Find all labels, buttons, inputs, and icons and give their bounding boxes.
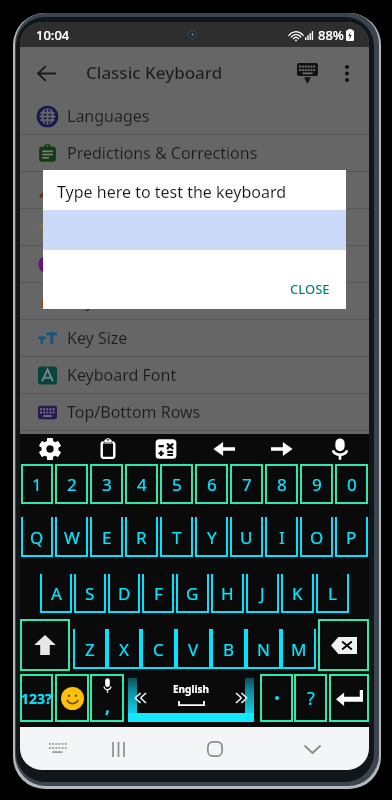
- staticText: 123?: [21, 689, 52, 708]
- button[interactable]: Sound & Vibration: [20, 246, 369, 283]
- staticText: C: [153, 638, 164, 661]
- staticText: Languages: [67, 105, 150, 127]
- staticText: Q: [30, 526, 44, 549]
- button[interactable]: Q: [21, 517, 53, 557]
- button[interactable]: 0: [335, 464, 368, 504]
- staticText: I: [279, 526, 285, 549]
- button[interactable]: Voice input: [311, 434, 369, 464]
- staticText: CLOSE: [290, 280, 330, 298]
- button[interactable]: H: [211, 574, 244, 613]
- staticText: Gestures: [67, 179, 134, 201]
- button[interactable]: Recents: [98, 729, 138, 769]
- button[interactable]: Settings: [20, 434, 79, 464]
- button[interactable]: Key Press: [20, 283, 369, 320]
- staticText: N: [257, 638, 270, 661]
- button[interactable]: Key Size: [20, 320, 369, 357]
- button[interactable]: 2: [55, 464, 88, 504]
- button[interactable]: C: [141, 629, 176, 669]
- button[interactable]: Keyboard Font: [20, 357, 369, 394]
- staticText: T: [172, 526, 182, 549]
- button[interactable]: P: [335, 517, 368, 557]
- staticText: U: [240, 526, 253, 549]
- button[interactable]: Back: [26, 53, 66, 93]
- button[interactable]: Languages: [20, 98, 369, 135]
- button[interactable]: D: [108, 574, 140, 613]
- staticText: 10:04: [36, 26, 70, 44]
- button[interactable]: 123?: [20, 674, 53, 722]
- button[interactable]: Predictions & Corrections: [20, 135, 369, 172]
- button[interactable]: 6: [195, 464, 228, 504]
- button[interactable]: G: [176, 574, 209, 613]
- staticText: ?: [307, 686, 315, 711]
- button[interactable]: Backspace: [318, 619, 369, 671]
- button[interactable]: 3: [90, 464, 123, 504]
- staticText: D: [118, 582, 131, 605]
- button[interactable]: X: [107, 629, 141, 669]
- staticText: 8: [277, 473, 287, 496]
- staticText: Predictions & Corrections: [67, 142, 258, 164]
- button[interactable]: Move right: [253, 434, 311, 464]
- button[interactable]: A: [40, 574, 72, 613]
- staticText: 6: [207, 473, 217, 496]
- button[interactable]: Hide keyboard: [288, 54, 326, 92]
- button[interactable]: Text editing: [137, 434, 195, 464]
- button[interactable]: Clipboard: [79, 434, 137, 464]
- button[interactable]: S: [74, 574, 106, 613]
- button[interactable]: U: [230, 517, 263, 557]
- button[interactable]: Enter: [329, 674, 369, 722]
- staticText: W: [64, 526, 80, 549]
- button[interactable]: Home: [195, 729, 235, 769]
- button[interactable]: 8: [265, 464, 298, 504]
- button[interactable]: F: [142, 574, 174, 613]
- button[interactable]: ?: [294, 674, 327, 722]
- button[interactable]: M: [281, 629, 316, 669]
- button[interactable]: 5: [160, 464, 193, 504]
- button[interactable]: Z: [73, 629, 107, 669]
- staticText: P: [346, 526, 357, 549]
- staticText: K: [292, 582, 303, 605]
- button[interactable]: 7: [230, 464, 263, 504]
- button[interactable]: T: [160, 517, 193, 557]
- staticText: ,: [105, 695, 110, 718]
- button[interactable]: K: [281, 574, 314, 613]
- button[interactable]: O: [300, 517, 333, 557]
- button[interactable]: Top/Bottom Rows: [20, 394, 369, 431]
- button[interactable]: Appearance: [20, 209, 369, 246]
- staticText: 1: [32, 473, 42, 496]
- button[interactable]: W: [55, 517, 88, 557]
- staticText: H: [221, 582, 234, 605]
- button[interactable]: Emoji: [55, 674, 89, 722]
- button[interactable]: CLOSE: [280, 273, 340, 305]
- button[interactable]: Y: [195, 517, 228, 557]
- staticText: English: [173, 682, 209, 696]
- staticText: 3: [102, 473, 112, 496]
- button[interactable]: N: [246, 629, 281, 669]
- button[interactable]: 9: [300, 464, 333, 504]
- staticText: Z: [85, 638, 95, 661]
- button[interactable]: Shift: [20, 619, 70, 671]
- staticText: 0: [347, 473, 357, 496]
- button[interactable]: More options: [331, 57, 363, 89]
- button[interactable]: ,: [90, 674, 124, 722]
- button[interactable]: I: [265, 517, 298, 557]
- button[interactable]: B: [211, 629, 246, 669]
- button[interactable]: Back: [292, 729, 332, 769]
- button[interactable]: V: [176, 629, 211, 669]
- button[interactable]: Change keyboard: [38, 729, 78, 769]
- staticText: S: [85, 582, 95, 605]
- staticText: A: [51, 582, 62, 605]
- button[interactable]: J: [246, 574, 279, 613]
- button[interactable]: E: [90, 517, 123, 557]
- button[interactable]: Space: [126, 674, 256, 722]
- staticText: X: [119, 638, 129, 661]
- button[interactable]: R: [125, 517, 158, 557]
- button[interactable]: L: [316, 574, 349, 613]
- button[interactable]: [260, 674, 293, 722]
- button[interactable]: 1: [21, 464, 53, 504]
- button[interactable]: Move left: [195, 434, 253, 464]
- button[interactable]: Gestures: [20, 172, 369, 209]
- button[interactable]: 4: [125, 464, 158, 504]
